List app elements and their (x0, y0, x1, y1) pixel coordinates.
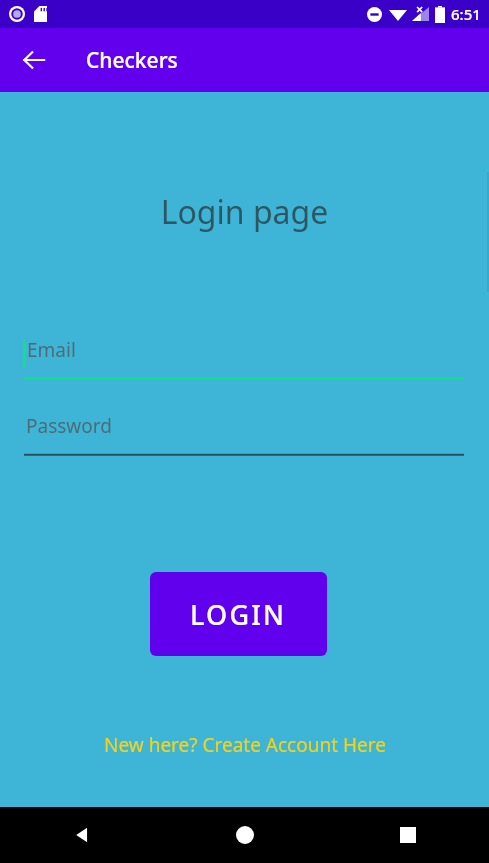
staticText: 6:51 (451, 4, 481, 24)
button[interactable]: Back (0, 807, 163, 863)
staticText: Password (26, 413, 112, 439)
button[interactable]: Email (24, 334, 464, 380)
button[interactable]: Back (12, 38, 56, 82)
button[interactable]: Home (163, 807, 326, 863)
staticText: LOGIN (190, 596, 287, 633)
staticText: Checkers (86, 46, 178, 75)
staticText: Login page (0, 190, 489, 234)
staticText: New here? Create Account Here (104, 732, 386, 758)
button[interactable]: New here? Create Account Here (0, 732, 489, 758)
staticText: Email (27, 337, 76, 363)
button[interactable]: LOGIN (150, 572, 327, 656)
button[interactable]: Password (24, 410, 464, 456)
button[interactable]: Recent apps (326, 807, 489, 863)
